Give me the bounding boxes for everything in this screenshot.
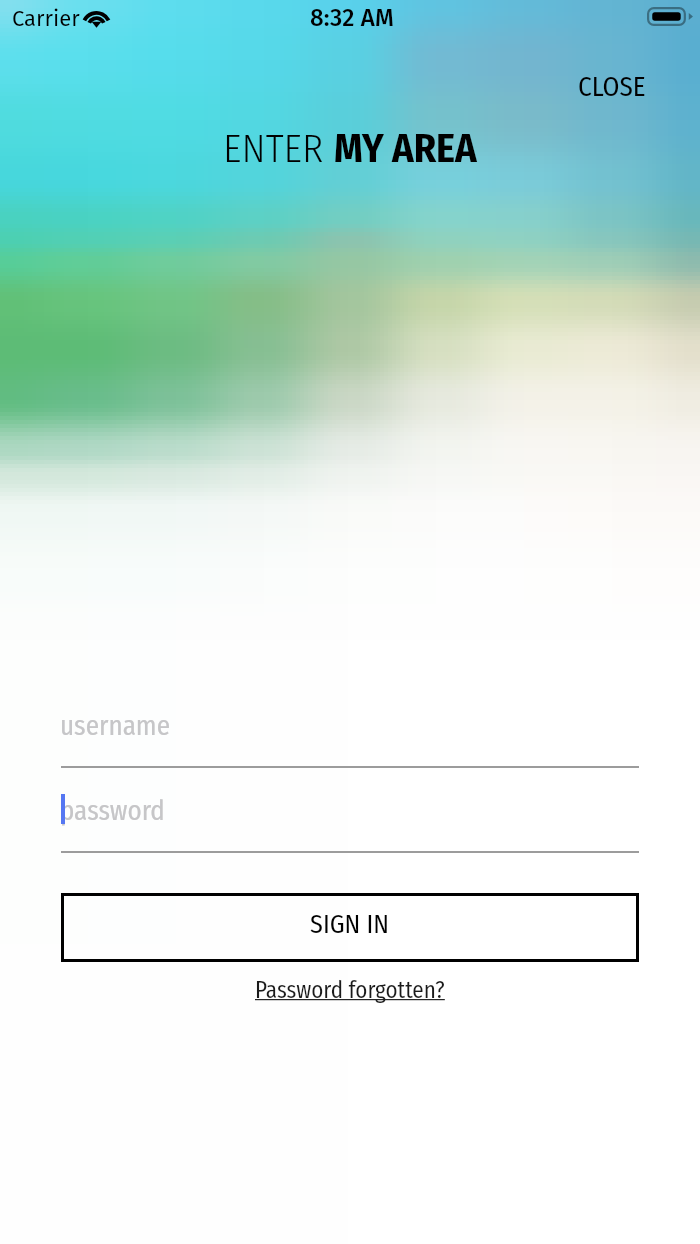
- staticText: Password forgotten?: [255, 976, 445, 1004]
- staticText: username: [60, 710, 170, 742]
- button[interactable]: CLOSE: [568, 63, 656, 111]
- staticText: ENTER: [223, 125, 334, 173]
- button[interactable]: Password forgotten?: [249, 972, 451, 1008]
- button[interactable]: SIGN IN: [61, 893, 639, 962]
- staticText: 8:32 AM: [310, 4, 395, 33]
- staticText: MY AREA: [334, 125, 477, 173]
- staticText: password: [60, 795, 165, 827]
- staticText: CLOSE: [578, 71, 646, 103]
- staticText: SIGN IN: [310, 909, 390, 940]
- button[interactable]: password: [61, 785, 639, 851]
- staticText: Carrier: [12, 5, 80, 31]
- button[interactable]: username: [61, 700, 639, 766]
